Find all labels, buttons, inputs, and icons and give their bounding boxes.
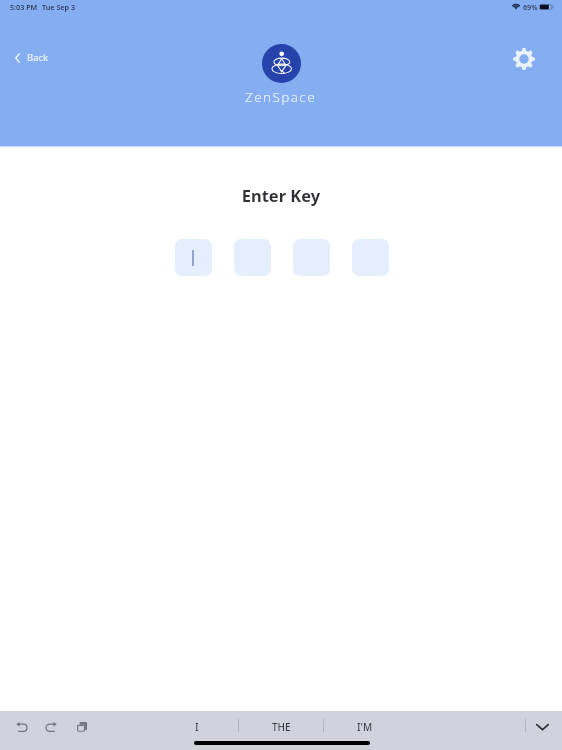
button[interactable]: I'M <box>323 716 407 738</box>
button[interactable]: Undo <box>11 716 33 738</box>
staticText: Tue Sep 3 <box>42 2 76 12</box>
button[interactable]: Hide keyboard <box>531 716 553 738</box>
button[interactable]: THE <box>239 716 323 738</box>
staticText: I'M <box>357 720 373 734</box>
staticText: THE <box>272 720 291 734</box>
button[interactable]: Redo <box>40 716 62 738</box>
staticText: Back <box>27 51 49 64</box>
button[interactable]: Back <box>7 46 57 69</box>
staticText: Enter Key <box>0 184 562 206</box>
staticText: I <box>195 720 199 734</box>
button[interactable] <box>293 239 330 276</box>
button[interactable] <box>234 239 271 276</box>
staticText: ZenSpace <box>245 88 317 106</box>
button[interactable] <box>352 239 389 276</box>
button[interactable] <box>175 239 212 276</box>
button[interactable]: I <box>155 716 239 738</box>
button[interactable]: Clipboard <box>71 716 93 738</box>
staticText: 69% <box>523 2 538 12</box>
staticText: 5:03 PM <box>10 2 38 12</box>
button[interactable]: Settings <box>507 42 540 75</box>
